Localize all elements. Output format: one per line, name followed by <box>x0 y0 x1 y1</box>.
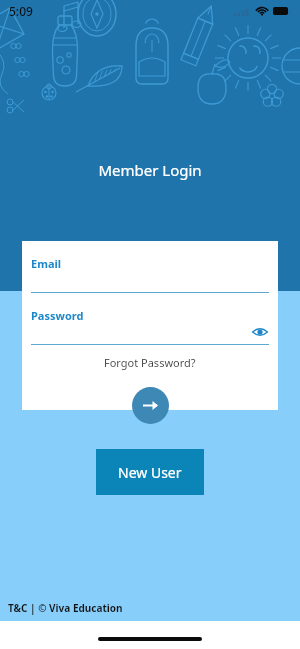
staticText: T&C | © Viva Education <box>8 601 123 615</box>
button[interactable]: New User <box>96 449 204 495</box>
staticText: Password <box>31 308 84 323</box>
staticText: 5:09 <box>9 3 33 19</box>
button[interactable]: T&C | © Viva Education <box>8 601 123 615</box>
button[interactable]: Submit <box>132 387 169 424</box>
button[interactable]: Password <box>31 308 269 345</box>
button[interactable]: Show password <box>251 323 269 341</box>
button[interactable]: Email <box>31 256 269 293</box>
button[interactable]: Forgot Password? <box>98 353 202 372</box>
staticText: Member Login <box>98 160 202 180</box>
staticText: New User <box>118 463 182 482</box>
staticText: Email <box>31 256 62 271</box>
staticText: Forgot Password? <box>104 355 196 370</box>
